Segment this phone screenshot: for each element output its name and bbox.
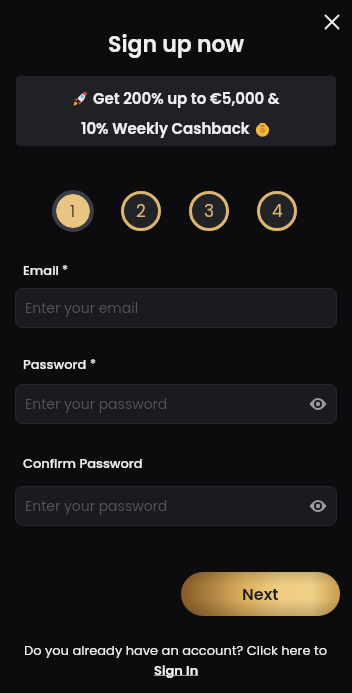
button[interactable]: Enter your email: [15, 288, 337, 328]
button[interactable]: Next: [181, 572, 340, 616]
staticText: Email: [23, 261, 59, 279]
staticText: Enter your password: [25, 496, 168, 516]
staticText: Sign In: [154, 661, 199, 679]
staticText: *: [59, 261, 69, 278]
staticText: Sign up now: [108, 29, 245, 60]
staticText: Next: [242, 583, 279, 605]
staticText: 4: [272, 199, 283, 223]
staticText: 2: [136, 199, 146, 223]
staticText: Do you already have an account? Click he…: [24, 641, 328, 659]
button[interactable]: [304, 390, 332, 418]
staticText: Enter your email: [25, 298, 139, 318]
staticText: 3: [204, 199, 215, 223]
staticText: Confirm Password: [23, 454, 143, 472]
button[interactable]: Enter your password: [15, 486, 337, 526]
button[interactable]: Enter your password: [15, 384, 337, 424]
staticText: 10% Weekly Cashback: [81, 118, 254, 139]
staticText: 1: [70, 200, 76, 222]
button[interactable]: Sign In: [154, 661, 199, 679]
staticText: Enter your password: [25, 394, 168, 414]
staticText: Get 200% up to €5,000 &: [93, 88, 280, 109]
staticText: Password: [23, 355, 87, 373]
button[interactable]: [320, 10, 344, 34]
staticText: *: [87, 355, 97, 372]
button[interactable]: [304, 492, 332, 520]
